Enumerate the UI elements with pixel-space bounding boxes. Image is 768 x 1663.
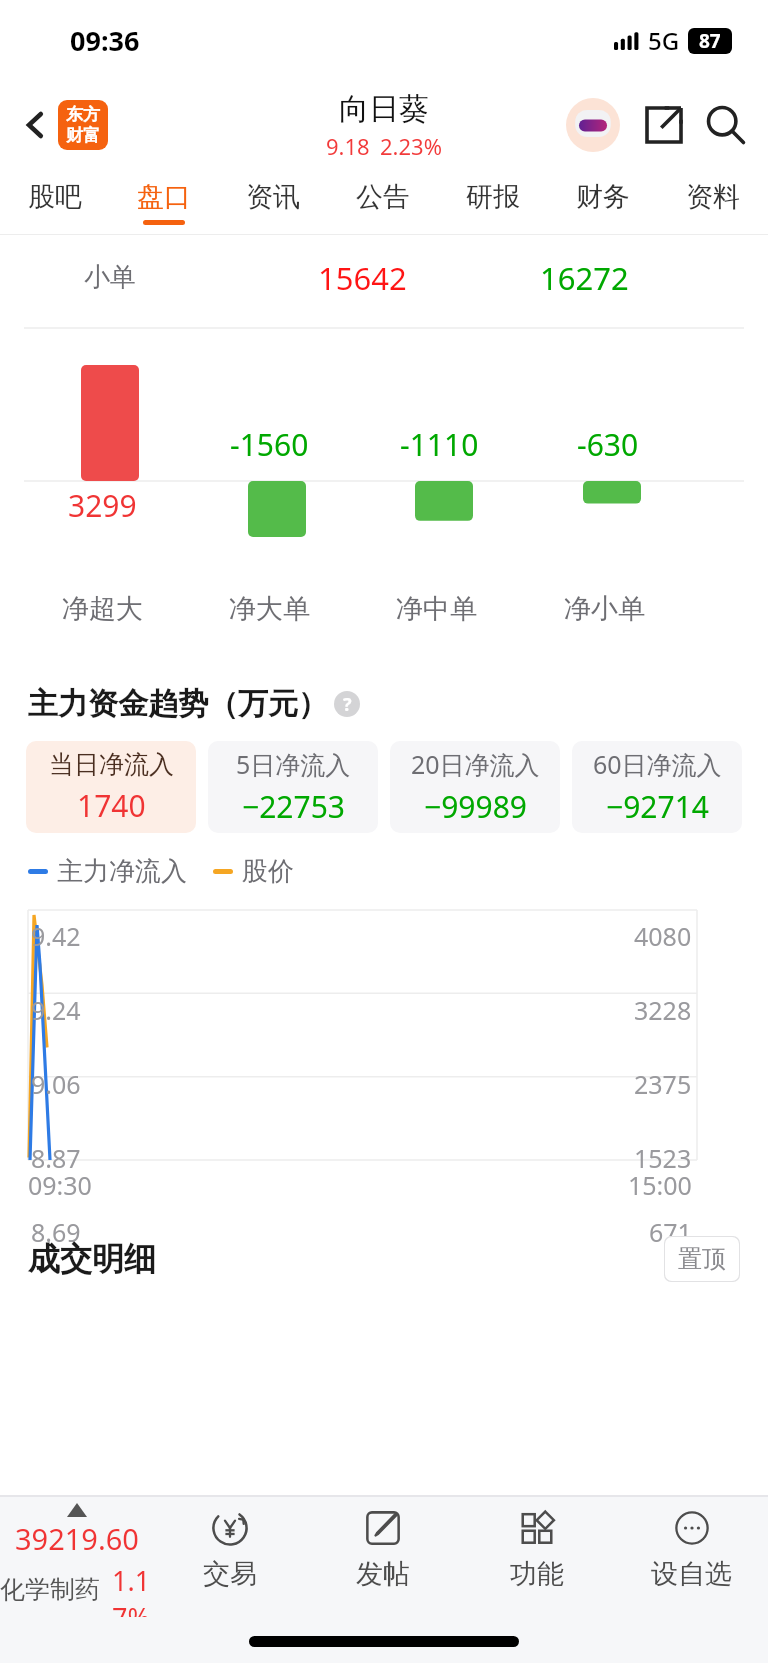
staticText: 9.42 (31, 919, 81, 953)
staticText: 8.87 (31, 1141, 81, 1175)
button[interactable]: 20日净流入 (390, 741, 560, 833)
staticText: 87 (699, 28, 721, 54)
staticText: 1740 (77, 785, 146, 826)
staticText: 资讯 (246, 180, 300, 214)
staticText: -1110 (400, 424, 479, 465)
staticText: 东方 (66, 104, 100, 125)
button[interactable]: 研报 (438, 170, 548, 235)
button[interactable]: 资讯 (218, 170, 328, 235)
staticText: 化学制药 (0, 1574, 100, 1605)
staticText: 3299 (68, 485, 137, 526)
staticText: 60日净流入 (593, 747, 722, 781)
staticText: 资料 (686, 180, 740, 214)
staticText: 09:30 (28, 1168, 92, 1202)
button[interactable]: Assistant (564, 96, 622, 154)
button[interactable]: 置顶 (664, 1236, 740, 1282)
staticText: 净超大 (62, 592, 143, 626)
staticText: -1560 (230, 424, 309, 465)
staticText: 5日净流入 (236, 747, 351, 781)
button[interactable]: 功能 (460, 1497, 614, 1617)
staticText: 置顶 (678, 1244, 726, 1274)
staticText: 主力净流入 (57, 855, 187, 888)
staticText: 财务 (576, 180, 630, 214)
button[interactable]: 60日净流入 (572, 741, 742, 833)
staticText: 9.06 (31, 1067, 81, 1101)
staticText: 2.23% (380, 131, 442, 161)
button[interactable]: 当日净流入 (26, 741, 196, 833)
staticText: 净小单 (564, 592, 645, 626)
staticText: 39219.60 (15, 1519, 139, 1558)
staticText: 9.24 (31, 993, 81, 1027)
button[interactable]: 5日净流入 (208, 741, 378, 833)
staticText: −99989 (424, 786, 527, 827)
staticText: 净中单 (396, 592, 477, 626)
staticText: 成交明细 (28, 1239, 156, 1279)
staticText: 15:00 (628, 1168, 692, 1202)
button[interactable]: 盘口 (109, 170, 218, 235)
staticText: 股吧 (28, 180, 82, 214)
staticText: 20日净流入 (411, 747, 540, 781)
button[interactable]: Back (14, 103, 58, 147)
staticText: -630 (577, 424, 639, 465)
staticText: 8.69 (31, 1215, 81, 1249)
staticText: 研报 (466, 180, 520, 214)
staticText: 财富 (66, 125, 100, 146)
button[interactable]: 股吧 (0, 170, 109, 235)
staticText: 盘口 (137, 180, 191, 214)
staticText: 净大单 (229, 592, 310, 626)
staticText: 16272 (540, 257, 629, 299)
staticText: 向日葵 (339, 90, 429, 128)
staticText: −92714 (606, 786, 709, 827)
staticText: ? (343, 692, 352, 717)
staticText: 671 (649, 1215, 692, 1249)
button[interactable]: 资料 (658, 170, 768, 235)
staticText: 3228 (634, 993, 692, 1027)
staticText: 功能 (510, 1557, 564, 1591)
staticText: 发帖 (356, 1557, 410, 1591)
button[interactable]: 财务 (548, 170, 658, 235)
staticText: 小单 (84, 261, 136, 294)
button[interactable]: 公告 (328, 170, 438, 235)
staticText: −22753 (242, 786, 345, 827)
button[interactable]: 39219.60 (0, 1497, 153, 1617)
button[interactable]: East Money (58, 100, 108, 150)
staticText: 4080 (634, 919, 692, 953)
button[interactable]: Search (700, 99, 752, 151)
staticText: 公告 (356, 180, 410, 214)
staticText: 9.18 (326, 131, 370, 161)
staticText: 09:36 (70, 22, 140, 59)
button[interactable]: Help (334, 691, 360, 717)
staticText: 1.17% (112, 1562, 153, 1617)
staticText: 当日净流入 (49, 749, 174, 780)
staticText: 1523 (634, 1141, 692, 1175)
staticText: 15642 (318, 257, 407, 299)
button[interactable]: Share (638, 99, 690, 151)
staticText: 5G (648, 24, 680, 57)
staticText: 设自选 (651, 1557, 732, 1591)
staticText: 2375 (634, 1067, 692, 1101)
button[interactable]: 发帖 (306, 1497, 460, 1617)
staticText: 股价 (242, 855, 294, 888)
staticText: 交易 (203, 1557, 257, 1591)
button[interactable]: 设自选 (614, 1497, 768, 1617)
staticText: 主力资金趋势（万元） (28, 685, 328, 723)
button[interactable]: 交易 (153, 1497, 306, 1617)
